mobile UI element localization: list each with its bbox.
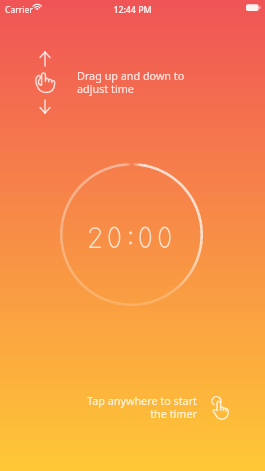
staticText: Drag up and down to adjust time [77, 68, 185, 96]
other: Tap to start the timer [205, 394, 235, 424]
other: Drag to adjust time [28, 46, 64, 118]
button[interactable]: Carrier [0, 0, 265, 471]
staticText: 12:44 PM [0, 4, 265, 16]
staticText: Carrier [5, 4, 33, 16]
staticText: Tap anywhere to start the timer [69, 393, 197, 421]
